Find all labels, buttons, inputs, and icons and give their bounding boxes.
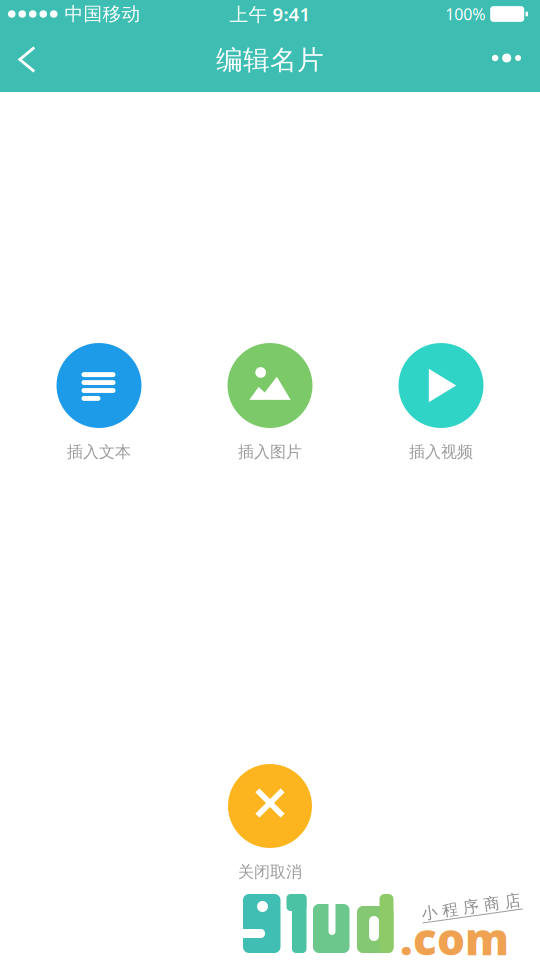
button[interactable]: 插入图片 xyxy=(200,343,340,462)
button[interactable]: 插入视频 xyxy=(371,343,511,462)
staticText: 100% xyxy=(445,3,485,25)
staticText: 关闭取消 xyxy=(238,862,302,882)
staticText: 插入视频 xyxy=(409,442,473,462)
staticText: 编辑名片 xyxy=(216,44,324,76)
button[interactable]: 更多 xyxy=(476,28,540,92)
staticText: 插入文本 xyxy=(67,442,131,462)
staticText: 小 程 序 商 店 xyxy=(421,897,521,917)
button[interactable]: 返回 xyxy=(0,28,54,92)
button[interactable]: 关闭取消 xyxy=(200,764,340,882)
staticText: .com xyxy=(400,909,509,960)
staticText: 中国移动 xyxy=(64,2,140,25)
staticText: 上午 9:41 xyxy=(229,2,310,26)
button[interactable]: 插入文本 xyxy=(29,343,169,462)
staticText: 插入图片 xyxy=(238,442,302,462)
